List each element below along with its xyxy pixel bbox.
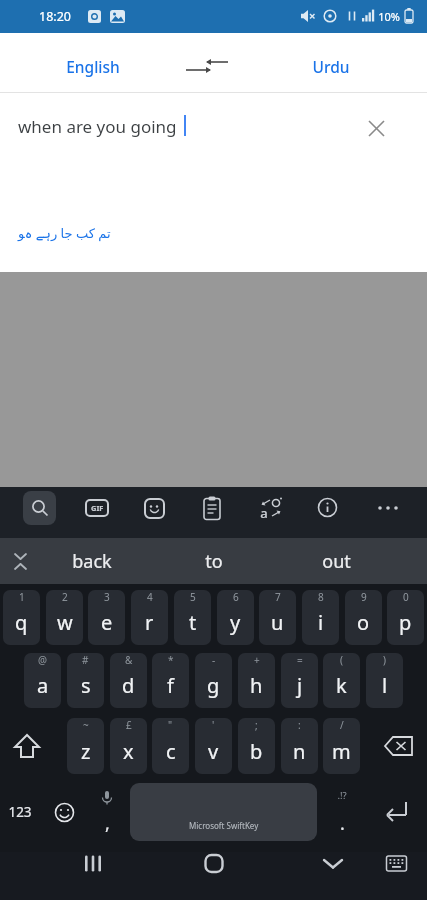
button[interactable]: + <box>238 653 275 708</box>
button[interactable]: , <box>95 783 119 841</box>
staticText: w <box>57 609 73 636</box>
button[interactable]: " <box>152 718 189 774</box>
button[interactable] <box>23 491 56 525</box>
staticText: h <box>250 672 263 699</box>
button[interactable]: 0 <box>387 590 424 645</box>
button[interactable]: to <box>164 546 264 576</box>
button[interactable]: 8 <box>302 590 339 645</box>
staticText: . <box>340 811 345 836</box>
button[interactable]: 4 <box>131 590 168 645</box>
button[interactable]: : <box>281 718 318 774</box>
staticText: 1 <box>19 590 25 604</box>
staticText: 10% <box>378 9 400 24</box>
staticText: g <box>207 672 220 699</box>
staticText: 18:20 <box>39 8 71 25</box>
staticText: & <box>125 653 133 667</box>
button[interactable] <box>360 112 392 144</box>
button[interactable] <box>383 734 415 758</box>
button[interactable]: # <box>67 653 104 708</box>
button[interactable]: ' <box>195 718 232 774</box>
staticText: Microsoft SwiftKey <box>189 820 259 831</box>
button[interactable]: 5 <box>174 590 211 645</box>
staticText: GIF <box>91 503 104 513</box>
button[interactable]: £ <box>110 718 147 774</box>
button[interactable] <box>317 497 338 518</box>
staticText: : <box>298 718 301 732</box>
staticText: 8 <box>318 590 324 604</box>
button[interactable] <box>203 496 222 521</box>
button[interactable]: back <box>42 546 142 576</box>
staticText: 5 <box>190 590 196 604</box>
staticText: 9 <box>361 590 367 604</box>
button[interactable]: GIF <box>85 499 109 517</box>
button[interactable]: a <box>257 495 284 522</box>
staticText: m <box>332 738 351 765</box>
staticText: v <box>208 738 219 765</box>
staticText: n <box>293 738 306 765</box>
staticText: d <box>122 672 135 699</box>
button[interactable]: ~ <box>67 718 104 774</box>
staticText: i <box>318 609 324 636</box>
button[interactable]: تم کب جا رہے ہو <box>18 220 218 246</box>
button[interactable]: & <box>110 653 147 708</box>
button[interactable] <box>53 801 76 824</box>
staticText: # <box>82 653 89 667</box>
staticText: ( <box>340 653 343 667</box>
button[interactable] <box>382 798 412 826</box>
button[interactable]: ( <box>323 653 360 708</box>
button[interactable]: @ <box>24 653 61 708</box>
staticText: 2 <box>62 590 68 604</box>
staticText: 3 <box>104 590 110 604</box>
button[interactable]: English <box>33 51 153 81</box>
staticText: Urdu <box>312 56 350 77</box>
staticText: 6 <box>233 590 239 604</box>
button[interactable] <box>385 853 408 875</box>
staticText: z <box>81 738 91 765</box>
button[interactable]: 3 <box>88 590 125 645</box>
staticText: + <box>254 653 260 667</box>
button[interactable]: 6 <box>217 590 254 645</box>
button[interactable] <box>183 56 231 78</box>
staticText: ' <box>212 718 215 732</box>
button[interactable]: Microsoft SwiftKey <box>130 783 317 841</box>
staticText: 123 <box>8 803 32 821</box>
staticText: " <box>168 718 173 732</box>
staticText: j <box>297 672 303 699</box>
button[interactable] <box>202 852 226 876</box>
staticText: when are you going <box>18 115 177 138</box>
button[interactable] <box>10 733 44 765</box>
staticText: ~ <box>83 718 89 732</box>
button[interactable] <box>377 504 399 512</box>
button[interactable]: 1 <box>3 590 40 645</box>
button[interactable] <box>144 498 165 519</box>
staticText: c <box>166 738 176 765</box>
button[interactable]: * <box>152 653 189 708</box>
staticText: ; <box>255 718 258 732</box>
staticText: back <box>72 549 112 574</box>
button[interactable] <box>321 852 345 876</box>
button[interactable]: 123 <box>0 797 42 827</box>
button[interactable]: ; <box>238 718 275 774</box>
staticText: t <box>189 609 197 636</box>
staticText: l <box>382 672 388 699</box>
staticText: English <box>66 56 120 77</box>
button[interactable]: ) <box>366 653 403 708</box>
button[interactable]: out <box>286 546 386 576</box>
button[interactable] <box>81 852 105 876</box>
button[interactable]: 9 <box>345 590 382 645</box>
button[interactable]: .!? <box>328 783 355 841</box>
staticText: u <box>271 609 284 636</box>
staticText: f <box>167 672 174 699</box>
button[interactable]: Urdu <box>271 51 391 81</box>
staticText: k <box>336 672 347 699</box>
button[interactable]: 2 <box>46 590 83 645</box>
button[interactable]: - <box>195 653 232 708</box>
button[interactable]: 7 <box>259 590 296 645</box>
button[interactable]: = <box>281 653 318 708</box>
button[interactable]: / <box>323 718 360 774</box>
staticText: 4 <box>147 590 153 604</box>
staticText: / <box>340 718 344 732</box>
button[interactable] <box>8 549 33 574</box>
staticText: 0 <box>403 590 409 604</box>
staticText: y <box>230 609 241 636</box>
